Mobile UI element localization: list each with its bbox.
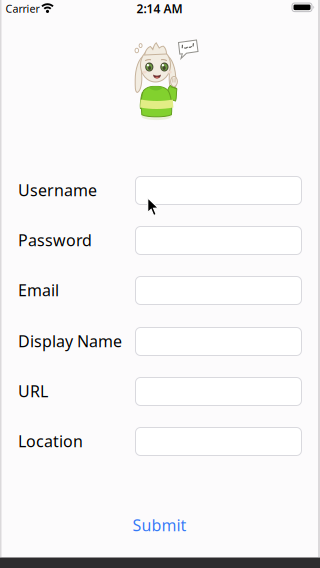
- staticText: Email: [18, 279, 59, 301]
- button[interactable]: Submit: [132, 514, 186, 536]
- staticText: Username: [18, 179, 97, 201]
- button[interactable]: Username: [135, 176, 301, 204]
- staticText: Location: [18, 430, 83, 452]
- button[interactable]: Password: [135, 226, 301, 254]
- button[interactable]: URL: [135, 377, 301, 405]
- staticText: 2:14 AM: [136, 1, 182, 17]
- staticText: Display Name: [18, 330, 122, 352]
- button[interactable]: Email: [135, 276, 301, 304]
- textField[interactable]: [143, 180, 293, 201]
- button[interactable]: Location: [135, 427, 301, 455]
- button[interactable]: Display Name: [135, 327, 301, 355]
- staticText: Submit: [132, 514, 186, 536]
- staticText: URL: [18, 380, 48, 402]
- staticText: Carrier: [5, 2, 39, 16]
- staticText: Password: [18, 229, 92, 251]
